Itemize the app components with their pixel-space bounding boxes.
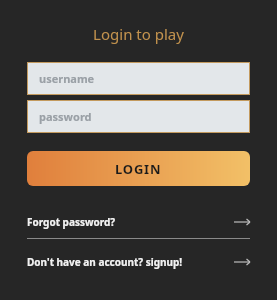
other: Forgot password [234,217,250,227]
button[interactable]: Forgot password? [27,213,250,231]
button[interactable]: password [27,100,250,133]
button[interactable]: Don't have an account? signup! [27,253,250,271]
staticText: password [39,109,92,124]
staticText: LOGIN [115,160,162,178]
staticText: username [39,71,95,86]
staticText: Don't have an account? signup! [27,255,183,269]
staticText: Forgot password? [27,215,116,229]
button[interactable]: username [27,62,250,95]
staticText: Login to play [27,24,250,44]
button[interactable]: LOGIN [27,151,250,186]
other: Sign up [234,257,250,267]
